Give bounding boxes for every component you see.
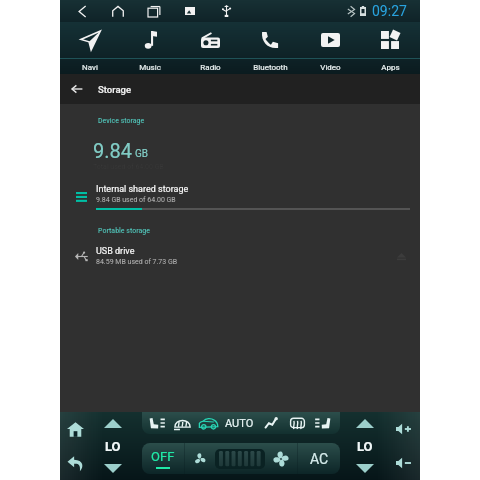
staticText: Apps <box>381 63 400 72</box>
button[interactable]: Fan up <box>265 443 297 474</box>
button[interactable]: AC <box>298 443 340 474</box>
button[interactable]: Rear seat heat <box>315 417 331 430</box>
button[interactable]: USB drive <box>60 241 420 271</box>
button[interactable]: Screenshot <box>172 0 208 22</box>
staticText: Music <box>139 63 161 72</box>
button[interactable]: Navigate up <box>60 74 94 104</box>
staticText: 9.84 GB used of 64.00 GB <box>96 196 176 204</box>
staticText: Storage <box>98 84 131 95</box>
button[interactable]: Music <box>120 22 180 58</box>
staticText: USB drive <box>96 246 135 257</box>
button[interactable]: Seat heat <box>149 417 165 430</box>
staticText: AUTO <box>225 417 254 430</box>
button[interactable]: Fan down <box>185 444 215 474</box>
staticText: AC <box>310 451 329 467</box>
staticText: Internal shared storage <box>96 184 189 195</box>
button[interactable]: Internal shared storage <box>60 183 420 213</box>
button[interactable]: Volume up <box>388 412 420 446</box>
button[interactable]: Front defrost <box>290 417 305 430</box>
staticText: LO <box>105 439 121 454</box>
button[interactable]: Back <box>60 446 90 480</box>
button[interactable]: Rear defrost <box>174 417 191 430</box>
button[interactable]: Bluetooth <box>240 22 300 58</box>
button[interactable]: Increase left temperature <box>90 412 136 435</box>
staticText: 84.59 MB used of 7.73 GB <box>96 258 178 266</box>
button[interactable]: Radio <box>180 22 240 58</box>
staticText: 9.84 <box>93 139 132 162</box>
button[interactable]: OFF <box>142 443 184 474</box>
button[interactable]: Volume down <box>388 446 420 480</box>
staticText: OFF <box>151 449 175 464</box>
button[interactable]: Decrease left temperature <box>90 457 136 480</box>
button[interactable]: Airflow <box>265 417 278 429</box>
staticText: Portable storage <box>98 227 151 235</box>
button[interactable]: Back <box>64 0 100 22</box>
staticText: LO <box>357 439 373 454</box>
button[interactable]: Increase right temperature <box>342 412 388 435</box>
button[interactable]: Apps <box>360 22 420 58</box>
button[interactable]: USB <box>208 0 244 22</box>
staticText: 09:27 <box>372 3 407 19</box>
staticText: Video <box>320 63 341 72</box>
button[interactable]: Home <box>100 0 136 22</box>
button[interactable]: Home <box>60 412 90 446</box>
button[interactable]: Video <box>300 22 360 58</box>
button[interactable]: Recents <box>136 0 172 22</box>
staticText: Device storage <box>98 117 145 125</box>
staticText: Bluetooth <box>253 63 288 72</box>
button[interactable]: Auto climate <box>199 417 218 429</box>
staticText: GB <box>135 148 149 160</box>
staticText: Radio <box>200 63 221 72</box>
staticText: Navi <box>82 63 98 72</box>
button[interactable]: Decrease right temperature <box>342 457 388 480</box>
button[interactable]: Navi <box>60 22 120 58</box>
button[interactable]: AUTO <box>221 412 258 434</box>
